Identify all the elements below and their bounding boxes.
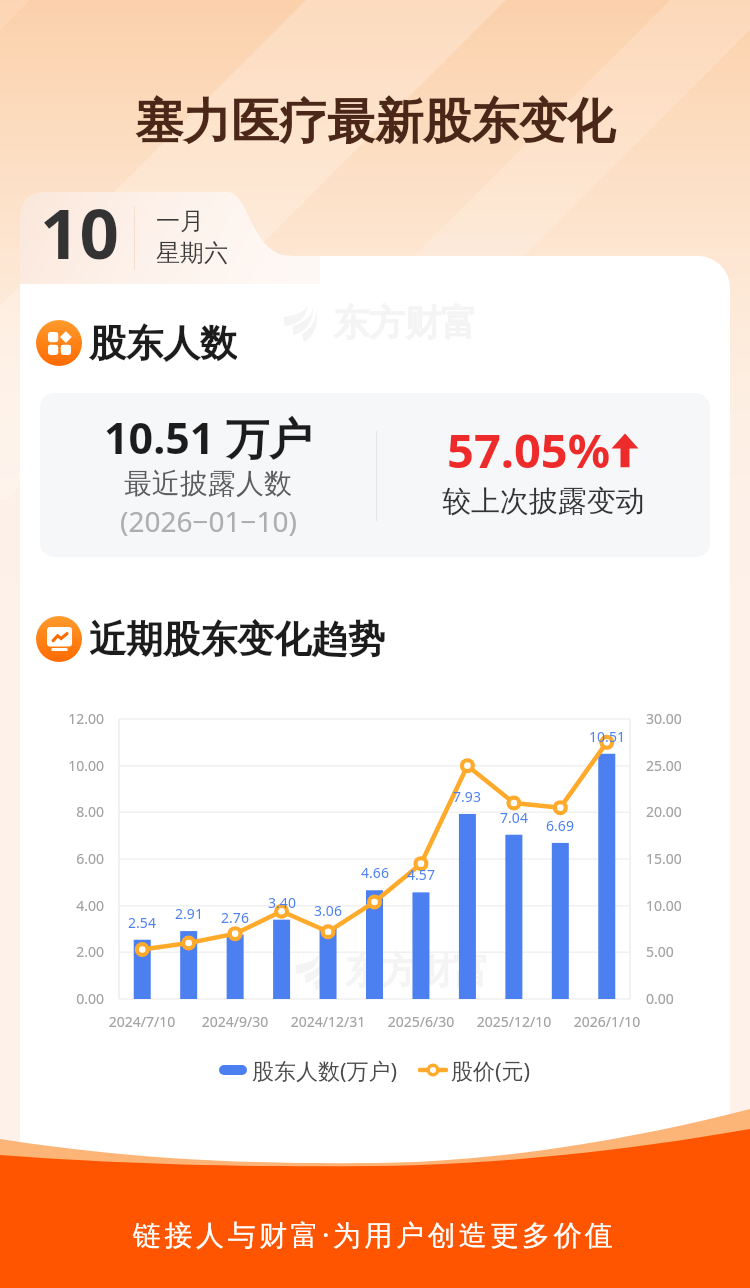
staticText: 0.00 xyxy=(42,989,104,1008)
staticText: 3.06 xyxy=(298,901,358,920)
staticText: 一月 xyxy=(156,206,204,236)
staticText: 最近披露人数 xyxy=(124,466,292,501)
staticText: 2.54 xyxy=(112,913,172,932)
staticText: 2024/7/10 xyxy=(82,1012,202,1031)
staticText: 5.00 xyxy=(646,942,674,961)
staticText: 0.00 xyxy=(646,989,674,1008)
staticText: 20.00 xyxy=(646,802,682,821)
staticText: 链接人与财富·为用户创造更多价值 xyxy=(133,1215,617,1253)
staticText: 6.69 xyxy=(530,816,590,835)
other: 近期股东变化趋势 xyxy=(36,616,82,662)
staticText: 12.00 xyxy=(42,709,104,728)
staticText: (2026−01−10) xyxy=(120,502,297,540)
staticText: 7.04 xyxy=(484,808,544,827)
staticText: 2026/1/10 xyxy=(547,1012,667,1031)
staticText: 6.00 xyxy=(42,849,104,868)
staticText: 2.76 xyxy=(205,908,265,927)
staticText: 10.51 xyxy=(577,727,637,746)
button[interactable]: 10 xyxy=(20,192,320,284)
staticText: 4.00 xyxy=(42,896,104,915)
staticText: 近期股东变化趋势 xyxy=(89,616,385,662)
staticText: 2025/6/30 xyxy=(361,1012,481,1031)
staticText: 7.93 xyxy=(437,787,497,806)
button[interactable]: 近期股东变化趋势 xyxy=(36,616,385,662)
staticText: 2024/12/31 xyxy=(268,1012,388,1031)
staticText: 15.00 xyxy=(646,849,682,868)
button[interactable]: 10.51 万户 xyxy=(40,393,710,557)
staticText: 2025/12/10 xyxy=(454,1012,574,1031)
staticText: 10.51 万户 xyxy=(104,408,312,467)
staticText: 星期六 xyxy=(156,238,228,268)
staticText: 10.00 xyxy=(42,756,104,775)
staticText: 2.00 xyxy=(42,942,104,961)
staticText: 2.91 xyxy=(159,904,219,923)
staticText: 10.00 xyxy=(646,896,682,915)
staticText: 股东人数(万户) xyxy=(252,1055,398,1085)
staticText: 8.00 xyxy=(42,802,104,821)
staticText: 10 xyxy=(40,185,119,277)
staticText: 塞力医疗最新股东变化 xyxy=(135,92,615,152)
staticText: 2024/9/30 xyxy=(175,1012,295,1031)
staticText: 4.66 xyxy=(345,863,405,882)
staticText: 股价(元) xyxy=(451,1055,531,1085)
other: 股东人数 xyxy=(36,320,82,366)
button[interactable]: 股东人数 xyxy=(36,320,237,366)
staticText: 30.00 xyxy=(646,709,682,728)
staticText: 25.00 xyxy=(646,756,682,775)
staticText: 股东人数 xyxy=(89,320,237,366)
staticText: 较上次披露变动 xyxy=(442,483,645,520)
staticText: 东方财富 xyxy=(333,300,477,345)
staticText: 3.40 xyxy=(252,893,312,912)
staticText: 4.57 xyxy=(391,865,451,884)
staticText: 东方财富 xyxy=(345,948,489,993)
staticText: 57.05% xyxy=(447,418,611,482)
